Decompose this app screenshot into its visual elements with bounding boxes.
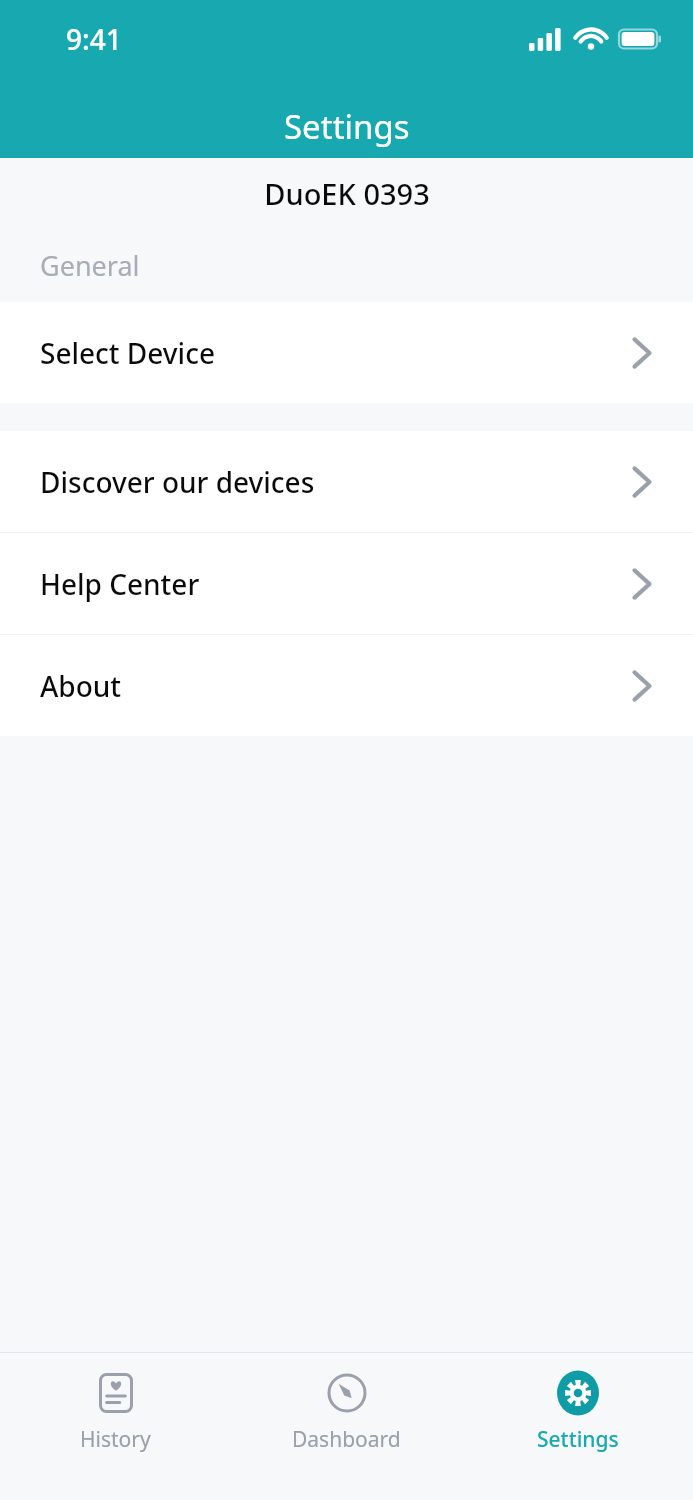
staticText: 9:41: [66, 20, 122, 58]
button[interactable]: Select Device: [0, 302, 693, 403]
button[interactable]: History: [0, 1353, 231, 1500]
button[interactable]: About: [0, 635, 693, 736]
staticText: Discover our devices: [40, 463, 631, 501]
staticText: Settings: [537, 1425, 619, 1454]
button[interactable]: Help Center: [0, 533, 693, 634]
button[interactable]: Discover our devices: [0, 431, 693, 532]
other: History: [94, 1371, 138, 1415]
staticText: Select Device: [40, 334, 631, 372]
staticText: General: [40, 247, 140, 284]
button[interactable]: Settings: [462, 1353, 693, 1500]
staticText: Settings: [284, 104, 410, 149]
staticText: Help Center: [40, 565, 631, 603]
staticText: DuoEK 0393: [264, 174, 430, 213]
staticText: History: [80, 1425, 151, 1454]
staticText: About: [40, 667, 631, 705]
other: Settings: [556, 1371, 600, 1415]
button[interactable]: Dashboard: [231, 1353, 462, 1500]
staticText: Dashboard: [292, 1425, 401, 1454]
other: Dashboard: [325, 1371, 369, 1415]
